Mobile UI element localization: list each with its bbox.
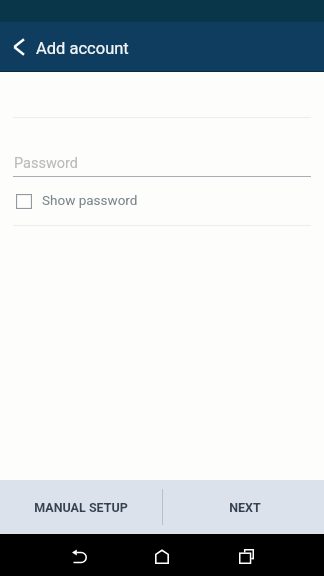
button[interactable]: MANUAL SETUP [0,480,162,534]
staticText: Password [14,155,79,172]
button[interactable]: Show password [0,186,324,218]
button[interactable]: NEXT [162,480,324,534]
staticText: MANUAL SETUP [34,500,128,515]
button[interactable]: Back [55,538,103,574]
button[interactable]: Home [138,538,186,574]
staticText: Add account [36,39,129,58]
staticText: NEXT [229,500,261,515]
staticText: Show password [42,192,138,208]
button[interactable]: Navigate up [0,27,40,67]
button[interactable]: Password [0,145,324,177]
button[interactable]: Recent apps [222,538,270,574]
